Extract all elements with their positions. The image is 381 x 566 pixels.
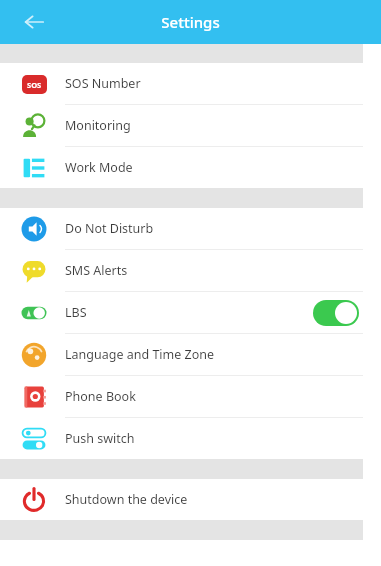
- staticText: Push switch: [65, 430, 135, 447]
- button[interactable]: Work Mode: [0, 147, 381, 188]
- button[interactable]: SMS Alerts: [0, 250, 381, 292]
- button[interactable]: Monitoring: [0, 105, 381, 147]
- button[interactable]: Push switch: [0, 418, 381, 459]
- staticText: Monitoring: [65, 117, 131, 134]
- staticText: LBS: [65, 304, 87, 321]
- button[interactable]: Language and Time Zone: [0, 334, 381, 376]
- staticText: Language and Time Zone: [65, 346, 215, 363]
- staticText: Do Not Disturb: [65, 220, 154, 237]
- button[interactable]: Do Not Disturb: [0, 208, 381, 250]
- button[interactable]: Back: [14, 2, 54, 42]
- staticText: SMS Alerts: [65, 262, 128, 279]
- staticText: Shutdown the device: [65, 491, 188, 508]
- staticText: SOS Number: [65, 75, 141, 92]
- staticText: Phone Book: [65, 388, 136, 405]
- button[interactable]: LBS: [0, 292, 381, 334]
- staticText: Settings: [161, 12, 220, 32]
- staticText: SOS: [27, 80, 42, 90]
- button[interactable]: Shutdown the device: [0, 479, 381, 520]
- staticText: Work Mode: [65, 159, 133, 176]
- button[interactable]: LBS toggle: [313, 300, 359, 326]
- button[interactable]: SOS: [0, 63, 381, 105]
- button[interactable]: Phone Book: [0, 376, 381, 418]
